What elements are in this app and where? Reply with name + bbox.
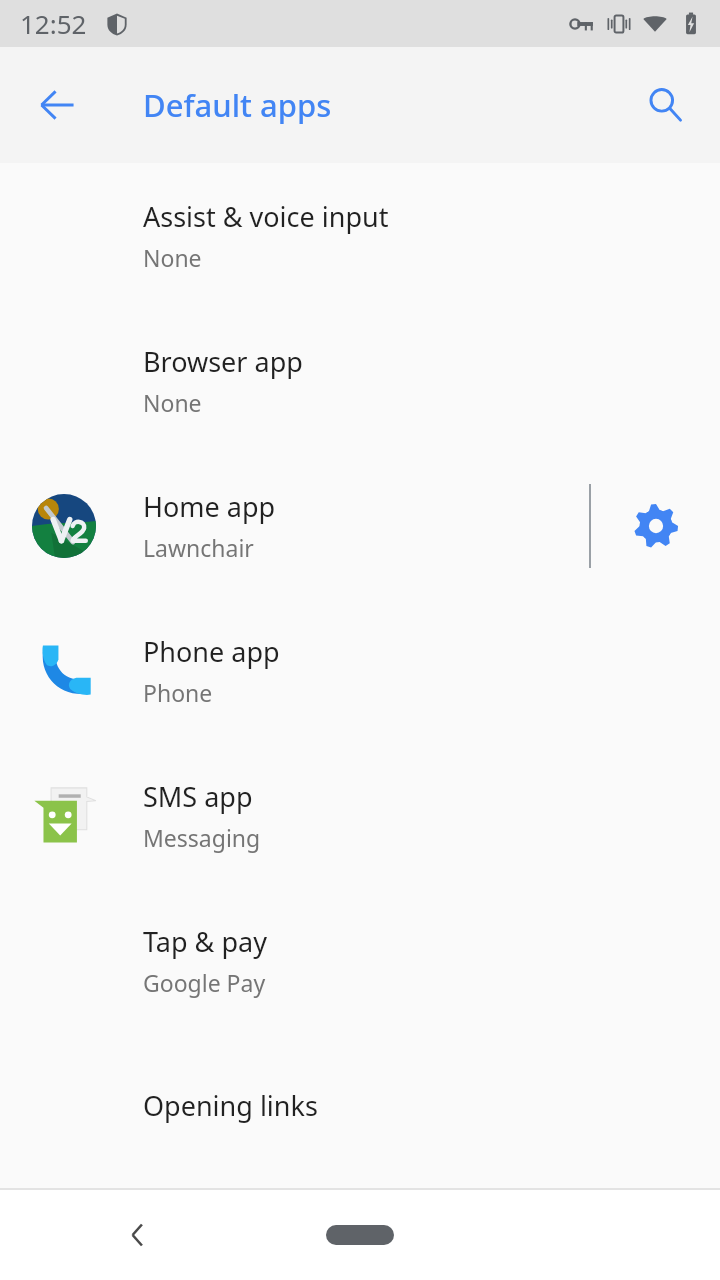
staticText: Google Pay <box>143 967 266 998</box>
button[interactable]: Home app settings <box>591 453 720 598</box>
button[interactable]: Assist & voice input <box>0 163 720 308</box>
staticText: Phone <box>143 677 213 708</box>
staticText: Lawnchair <box>143 532 254 563</box>
staticText: Messaging <box>143 822 261 853</box>
button[interactable]: Opening links <box>0 1033 720 1178</box>
staticText: Phone app <box>143 633 280 670</box>
staticText: SMS app <box>143 778 253 815</box>
staticText: 12:52 <box>20 6 87 41</box>
staticText: Browser app <box>143 343 303 380</box>
staticText: None <box>143 387 202 418</box>
button[interactable]: Home <box>295 1203 425 1267</box>
button[interactable]: Browser app <box>0 308 720 453</box>
button[interactable]: Search <box>628 68 702 142</box>
button[interactable]: Back <box>20 68 94 142</box>
staticText: Assist & voice input <box>143 198 389 235</box>
button[interactable]: Phone app <box>0 598 720 743</box>
staticText: Tap & pay <box>143 923 267 960</box>
button[interactable]: Back <box>102 1199 174 1271</box>
staticText: Default apps <box>143 84 332 126</box>
staticText: Home app <box>143 488 276 525</box>
button[interactable]: Home app <box>0 453 589 598</box>
staticText: None <box>143 242 202 273</box>
staticText: Opening links <box>143 1087 318 1124</box>
button[interactable]: SMS app <box>0 743 720 888</box>
button[interactable]: Tap & pay <box>0 888 720 1033</box>
